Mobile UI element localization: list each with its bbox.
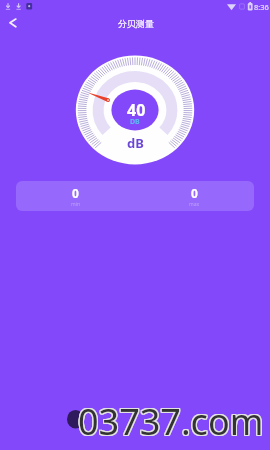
button[interactable]: Back [0,14,26,40]
staticText: 0 [72,185,79,201]
staticText: 03737.com [78,397,264,446]
staticText: dB [127,134,144,152]
staticText: max [189,201,200,208]
staticText: 03737.com [78,396,264,445]
staticText: 03737.com [79,397,265,446]
staticText: 40 [127,99,146,121]
staticText: 0 [191,185,198,201]
staticText: 03737.com [78,398,264,447]
button[interactable]: 0 [135,181,254,211]
staticText: 03737.com [77,397,263,446]
staticText: DB [130,117,140,127]
staticText: 03737.com [79,398,265,447]
staticText: 03737.com [77,398,263,447]
staticText: min [71,201,81,208]
staticText: 分贝测量 [118,18,154,29]
staticText: 03737.com [79,396,265,445]
staticText: 03737.com [77,396,263,445]
staticText: 8:36 [254,2,269,12]
button[interactable]: 0 [16,181,135,211]
